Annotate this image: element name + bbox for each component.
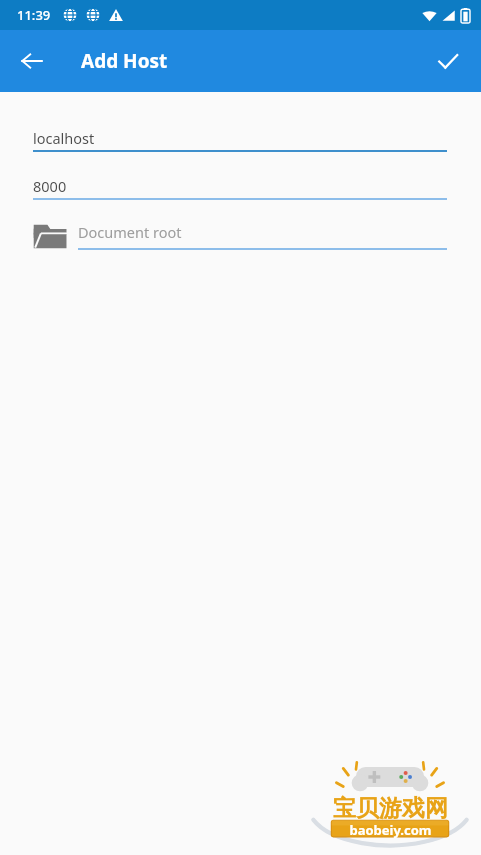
- staticText: 11:39: [17, 6, 51, 24]
- staticText: localhost: [33, 128, 95, 148]
- other: Choose document root folder: [33, 220, 69, 249]
- staticText: Document root: [78, 222, 182, 242]
- button[interactable]: Navigate up: [12, 41, 52, 81]
- staticText: 宝贝游戏网: [333, 794, 448, 823]
- staticText: 8000: [33, 176, 67, 196]
- button[interactable]: 8000: [0, 168, 481, 208]
- button[interactable]: Choose document root folder: [0, 216, 481, 258]
- button[interactable]: Save host: [428, 41, 468, 81]
- button[interactable]: localhost: [0, 120, 481, 160]
- staticText: baobeiy.com: [349, 821, 432, 839]
- staticText: Add Host: [81, 48, 168, 74]
